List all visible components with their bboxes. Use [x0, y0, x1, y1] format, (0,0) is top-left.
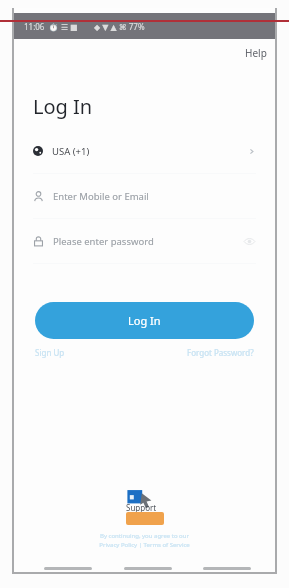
other: Nav — [203, 567, 251, 570]
staticText: ◆ ▼ ▲ ⌘ 77% — [94, 21, 145, 32]
staticText: Please enter password — [53, 235, 154, 248]
button[interactable] — [126, 512, 164, 525]
staticText: Help — [245, 46, 267, 60]
staticText: Log In — [33, 93, 93, 120]
button[interactable]: Sign Up — [35, 347, 65, 358]
button[interactable]: Forgot Password? — [187, 347, 254, 358]
staticText: Log In — [128, 313, 161, 328]
staticText: Sign Up — [35, 347, 65, 358]
other: Nav — [44, 567, 92, 570]
other: Show password — [243, 235, 256, 248]
staticText: Enter Mobile or Email — [53, 190, 149, 203]
other: Nav — [124, 567, 172, 570]
other: Select country — [247, 147, 256, 156]
staticText: Privacy Policy | Terms of Service — [99, 541, 190, 549]
button[interactable]: Help — [235, 42, 277, 64]
staticText: 11:06 ⏱ ☰ ■ — [24, 21, 78, 32]
staticText: Support — [126, 502, 157, 513]
staticText: Forgot Password? — [187, 347, 254, 358]
staticText: USA (+1) — [52, 145, 90, 158]
button[interactable]: Log In — [35, 302, 254, 339]
button[interactable]: USA (+1) — [12, 129, 277, 173]
staticText: By continuing, you agree to our — [100, 532, 189, 540]
